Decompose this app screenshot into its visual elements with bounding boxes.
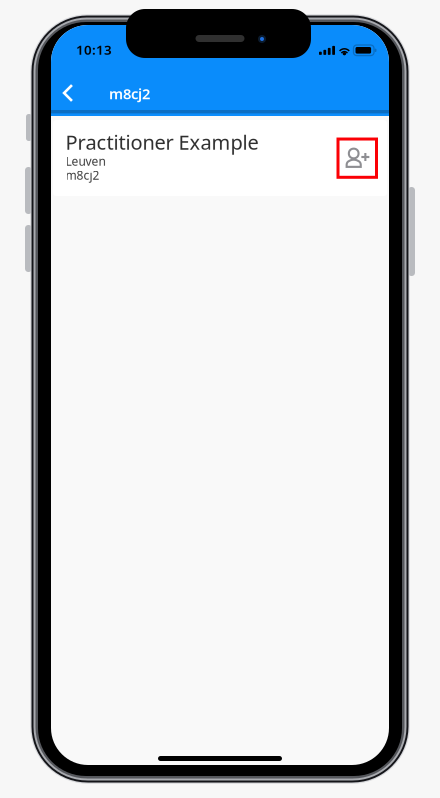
staticText: m8cj2 [109,84,150,103]
staticText: Leuven [65,153,105,169]
button[interactable]: Back [51,76,85,110]
staticText: Practitioner Example [65,129,258,155]
staticText: 10:13 [76,41,112,58]
button[interactable]: Add practitioner [338,139,376,177]
staticText: m8cj2 [65,167,99,183]
